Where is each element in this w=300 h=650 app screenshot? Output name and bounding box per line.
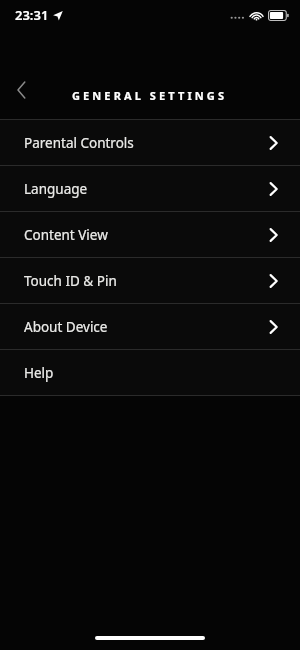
button[interactable]: Help	[0, 350, 300, 395]
staticText: Language	[24, 180, 88, 198]
staticText: 23:31	[15, 6, 49, 24]
button[interactable]: Content View	[0, 212, 300, 257]
staticText: Help	[24, 364, 54, 382]
button[interactable]: About Device	[0, 304, 300, 349]
staticText: GENERAL SETTINGS	[72, 88, 228, 103]
button[interactable]: Language	[0, 166, 300, 211]
staticText: Content View	[24, 226, 108, 244]
button[interactable]: Touch ID & Pin	[0, 258, 300, 303]
staticText: Touch ID & Pin	[24, 272, 117, 290]
button[interactable]: Parental Controls	[0, 120, 300, 165]
staticText: Parental Controls	[24, 134, 134, 152]
button[interactable]: Back	[0, 70, 42, 110]
staticText: About Device	[24, 318, 108, 336]
